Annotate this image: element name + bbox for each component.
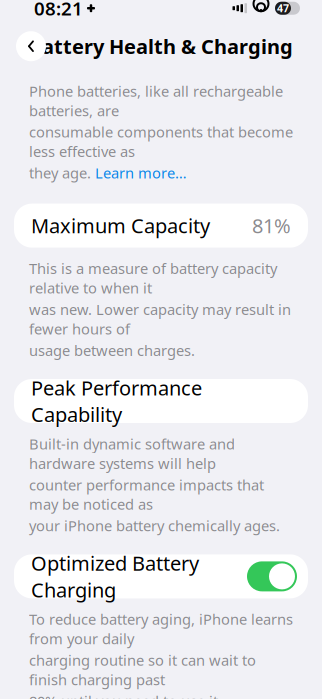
staticText: Peak Performance Capability [31,374,202,427]
staticText: they age. [29,163,91,183]
button[interactable]: Optimized Battery Charging [14,554,308,598]
staticText: 81% [252,212,291,239]
staticText: was new. Lower capacity may result in fe… [29,300,291,339]
staticText: Learn more… [95,163,187,183]
staticText: To reduce battery aging, iPhone learns f… [29,609,293,648]
staticText: Battery Health & Charging [29,33,293,59]
staticText: This is a measure of battery capacity re… [29,259,277,298]
staticText: counter performance impacts that may be … [29,475,264,514]
button[interactable]: Maximum Capacity [14,204,308,248]
button[interactable]: Learn more… [95,163,187,183]
staticText: charging routine so it can wait to finis… [29,650,256,689]
staticText: 47 [277,1,289,15]
staticText: consumable components that become less e… [29,122,293,161]
staticText: your iPhone battery chemically ages. [29,516,280,535]
button[interactable]: Peak Performance Capability [14,379,308,423]
button[interactable]: Back [16,31,46,61]
staticText: 08:21 [34,0,83,21]
staticText: Optimized Battery Charging [31,550,199,603]
staticText: usage between charges. [29,340,195,360]
staticText: Phone batteries, like all rechargeable b… [29,81,283,120]
staticText: 80% until you need to use it. [29,691,222,699]
staticText: Built-in dynamic software and hardware s… [29,434,235,473]
staticText: Maximum Capacity [31,212,210,239]
